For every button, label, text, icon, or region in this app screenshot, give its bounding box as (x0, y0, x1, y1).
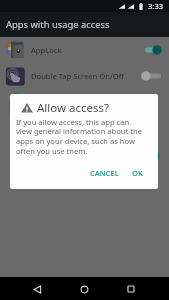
staticText: Double Tap Screen On/Off (31, 71, 124, 81)
staticText: Apps with usage access (6, 18, 110, 31)
button[interactable]: Home (73, 278, 95, 300)
button[interactable]: Switch off (139, 67, 169, 85)
button[interactable]: Double Tap Screen On/Off (0, 63, 169, 89)
staticText: CANCEL (90, 168, 119, 178)
staticText: OK (132, 168, 143, 178)
button[interactable]: AppLock (0, 37, 169, 63)
staticText: Allow access? (37, 100, 110, 116)
button[interactable]: Switch on (139, 41, 169, 59)
staticText: 3:33 (148, 1, 164, 11)
staticText: If you allow access, this app can view g… (16, 117, 143, 157)
staticText: AppLock (31, 45, 62, 55)
button[interactable]: Recents (120, 278, 142, 300)
button[interactable]: OK (128, 165, 147, 181)
button[interactable]: CANCEL (86, 165, 123, 181)
button[interactable]: Back (26, 278, 48, 300)
